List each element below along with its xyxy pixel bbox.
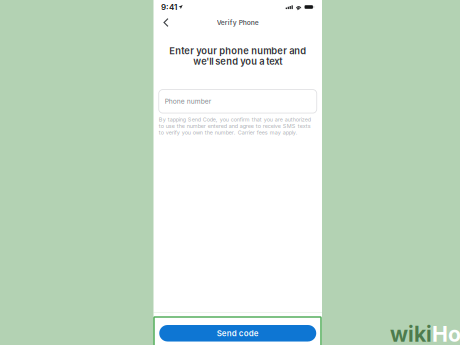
staticText: By tapping Send Code, you confirm that y… <box>159 116 311 136</box>
button[interactable]: Back <box>156 14 175 31</box>
button[interactable]: Send code <box>159 325 316 341</box>
staticText: Phone number <box>165 97 212 105</box>
staticText: Enter your phone number and <box>169 45 306 57</box>
staticText: How <box>432 321 460 345</box>
staticText: Send code <box>217 328 259 338</box>
staticText: wiki <box>390 321 432 345</box>
staticText: we'll send you a text <box>193 56 282 67</box>
staticText: 9:41 <box>161 2 177 12</box>
staticText: Verify Phone <box>217 18 259 27</box>
